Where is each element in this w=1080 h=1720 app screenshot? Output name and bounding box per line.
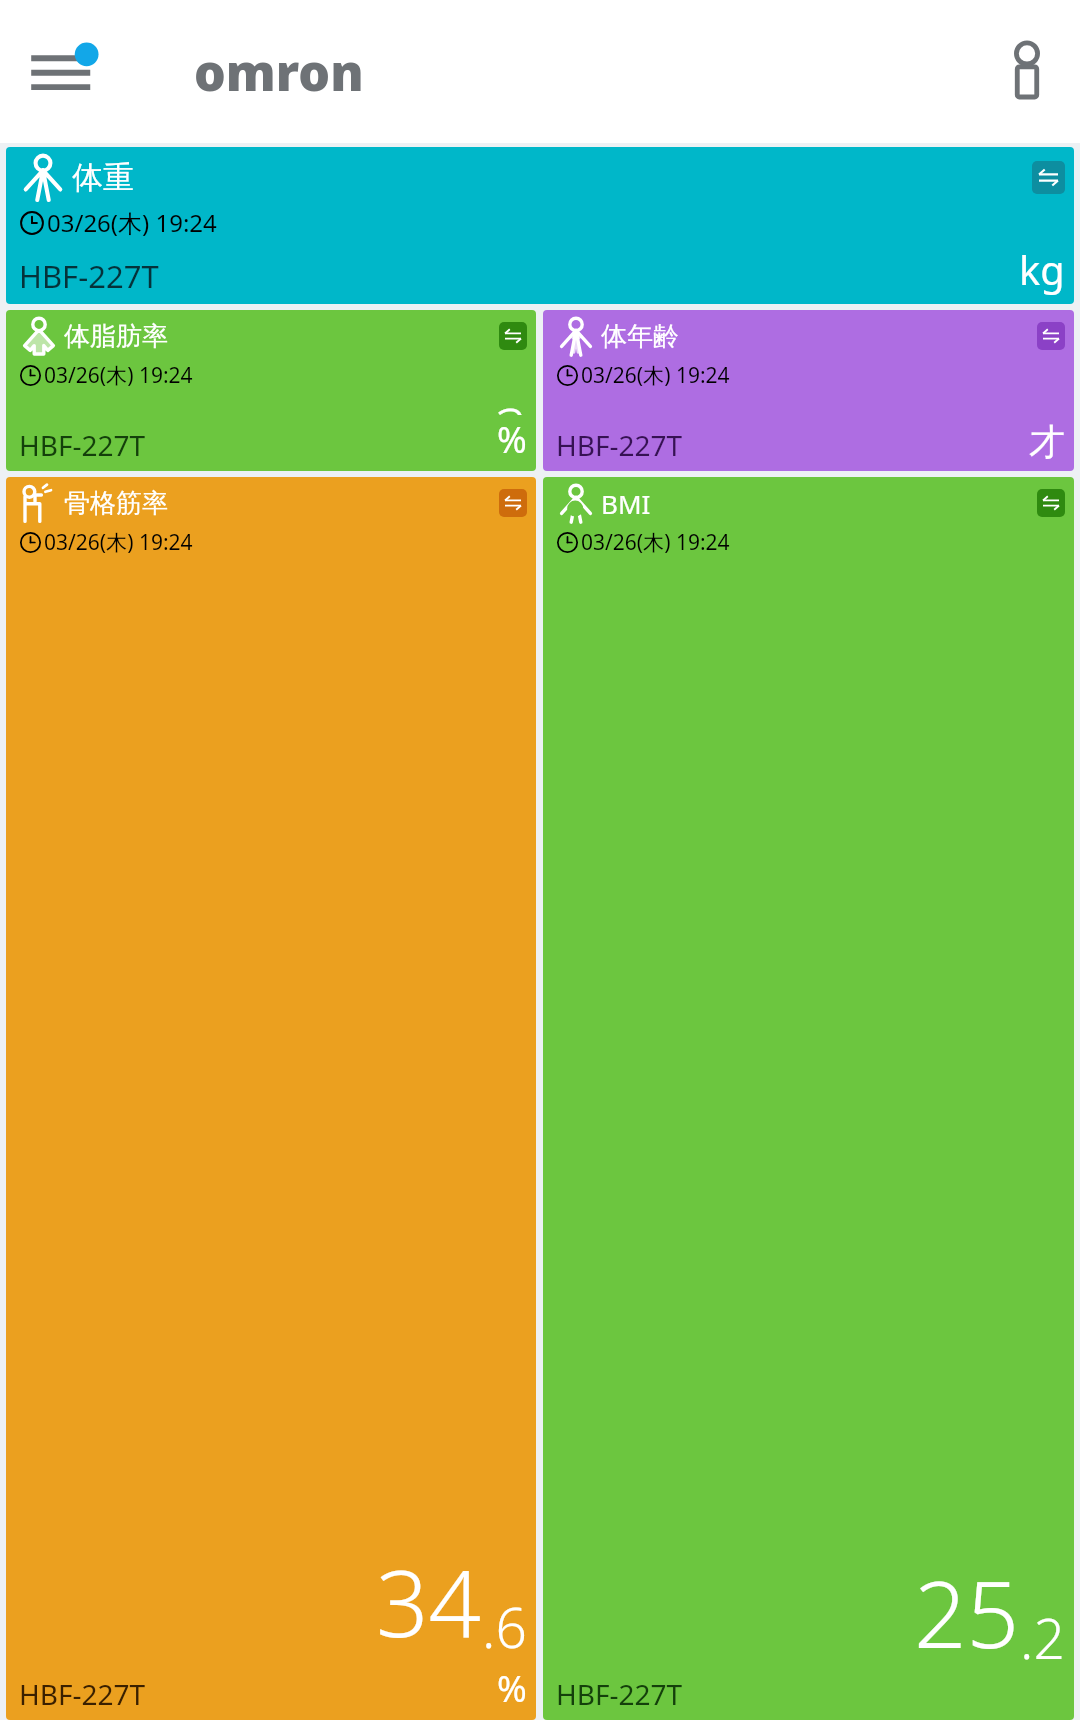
button[interactable]: Menu [24, 36, 96, 108]
staticText: 03/26(木) 19:24 [44, 361, 193, 390]
staticText: HBF-227T [556, 1675, 683, 1713]
button[interactable]: Switch display [1037, 489, 1065, 517]
button[interactable]: BMI [543, 477, 1074, 1720]
staticText: 34 [376, 1539, 482, 1664]
button[interactable]: Switch display [1037, 322, 1065, 350]
staticText: HBF-227T [19, 255, 159, 297]
staticText: 25 [914, 1550, 1020, 1675]
button[interactable]: Switch display [499, 489, 527, 517]
staticText: 体年齢 [601, 320, 679, 353]
button[interactable]: Switch display [1032, 161, 1065, 194]
button[interactable]: Info [1004, 40, 1050, 104]
staticText: 03/26(木) 19:24 [47, 206, 217, 239]
staticText: 才 [1029, 419, 1065, 464]
staticText: % [497, 1664, 527, 1713]
staticText: 体脂肪率 [64, 320, 168, 353]
staticText: HBF-227T [556, 426, 683, 464]
staticText: kg [1019, 243, 1065, 297]
staticText: BMI [601, 486, 651, 521]
staticText: 骨格筋率 [64, 487, 168, 520]
staticText: .6 [482, 1589, 527, 1664]
button[interactable]: 体脂肪率 [6, 310, 536, 471]
staticText: 03/26(木) 19:24 [581, 361, 730, 390]
staticText: 03/26(木) 19:24 [44, 528, 193, 557]
button[interactable]: Switch display [499, 322, 527, 350]
button[interactable]: 体年齢 [543, 310, 1074, 471]
staticText: % [497, 415, 527, 464]
staticText: HBF-227T [19, 1675, 146, 1713]
staticText: 体重 [72, 158, 134, 197]
button[interactable]: 体重 [6, 147, 1074, 304]
staticText: 03/26(木) 19:24 [581, 528, 730, 557]
staticText: .3 [482, 390, 527, 415]
button[interactable]: 骨格筋率 [6, 477, 536, 1720]
staticText: HBF-227T [19, 426, 146, 464]
staticText: .2 [1020, 1600, 1065, 1675]
staticText: omron [194, 38, 364, 106]
